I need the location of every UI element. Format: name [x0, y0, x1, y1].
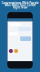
staticText: Right Now — [0, 0, 40, 15]
staticText: Who Want Your Coffee — [0, 0, 40, 12]
staticText: Conversations With People — [0, 0, 40, 10]
